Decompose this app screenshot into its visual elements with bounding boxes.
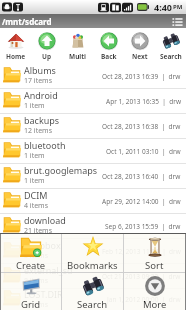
staticText: Next	[132, 52, 148, 61]
staticText: Search	[160, 52, 182, 61]
staticText: DCIM	[24, 189, 48, 201]
staticText: 1 item	[24, 151, 45, 161]
staticText: Apr 1, 2013 16:35 | drw	[106, 97, 181, 106]
button[interactable]: Home	[0, 28, 31, 64]
button[interactable]: backups	[0, 114, 186, 138]
staticText: Jan 1, 2012 00:00 | drw	[107, 295, 181, 304]
staticText: Android	[24, 89, 58, 101]
staticText: Oct 21, 2013 09:22 | drw	[102, 272, 181, 281]
staticText: Dropbox	[24, 239, 61, 251]
staticText: Multi	[69, 52, 87, 61]
button[interactable]: Dropbox	[0, 239, 186, 263]
staticText: Up	[42, 52, 52, 61]
staticText: bluetooth	[24, 139, 66, 151]
button[interactable]: DCIM	[0, 189, 186, 213]
staticText: More	[143, 298, 167, 310]
staticText: Oct 1, 2011 03:10 | drw	[106, 147, 181, 156]
staticText: Oct 28, 2013 16:40 | drw	[102, 172, 181, 181]
staticText: Albums	[24, 64, 56, 76]
staticText: brut.googlemaps	[24, 164, 98, 176]
staticText: 1 item	[24, 176, 45, 186]
button[interactable]: Create	[1, 234, 61, 272]
button[interactable]: Search	[62, 273, 123, 310]
staticText: 3 items	[24, 251, 49, 261]
button[interactable]: Sort	[124, 234, 185, 272]
staticText: Apr 29, 2012 14:00 | drw	[102, 197, 181, 206]
button[interactable]: download	[0, 214, 186, 238]
button[interactable]: bluetooth	[0, 139, 186, 163]
button[interactable]: external_sd	[0, 264, 186, 288]
staticText: 4:40	[154, 1, 172, 13]
staticText: 12 items	[24, 126, 53, 136]
button[interactable]: More	[124, 273, 185, 310]
button[interactable]: Menu	[171, 15, 184, 28]
staticText: Grid	[21, 298, 41, 310]
staticText: Home	[6, 52, 26, 61]
button[interactable]: LOST.DIR	[0, 289, 186, 310]
staticText: Create	[16, 259, 46, 272]
staticText: /mnt/sdcard	[2, 16, 52, 27]
staticText: Oct 28, 2013 16:38 | drw	[102, 122, 181, 131]
staticText: external_sd	[24, 264, 73, 276]
button[interactable]: Bookmarks	[62, 234, 123, 272]
staticText: LOST.DIR	[24, 288, 63, 300]
staticText: Feb 12, 2013 11:04 | drw	[102, 247, 181, 256]
staticText: Bookmarks	[67, 259, 118, 272]
staticText: backups	[24, 114, 60, 126]
staticText: 21 items	[24, 226, 53, 236]
button[interactable]: brut.googlemaps	[0, 164, 186, 188]
button[interactable]: Back	[93, 28, 124, 64]
staticText: PM	[173, 3, 183, 11]
button[interactable]: Albums	[0, 64, 186, 88]
staticText: 4 items	[24, 201, 49, 211]
button[interactable]: Up	[31, 28, 62, 64]
staticText: Back	[101, 52, 117, 61]
staticText: Sep 6, 2013 15:59 | drw	[105, 222, 181, 231]
staticText: Oct 28, 2013 16:39 | drw	[102, 72, 181, 81]
button[interactable]: Search	[155, 28, 186, 64]
staticText: 1 item	[24, 101, 45, 111]
button[interactable]: Android	[0, 89, 186, 113]
button[interactable]: Next	[124, 28, 155, 64]
staticText: 8 items	[24, 276, 49, 286]
staticText: 17 items	[24, 76, 53, 86]
button[interactable]: Multi	[62, 28, 93, 64]
staticText: download	[24, 214, 66, 226]
button[interactable]: Grid	[1, 273, 61, 310]
staticText: Sort	[145, 259, 164, 272]
staticText: Search	[77, 298, 108, 310]
staticText: 0 items	[24, 300, 49, 309]
